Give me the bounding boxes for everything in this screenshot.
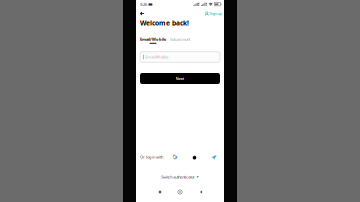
staticText: Sub-account — [170, 36, 190, 42]
button[interactable]: Continue with Google — [172, 154, 178, 160]
button[interactable]: Back — [197, 188, 205, 196]
button[interactable]: Home — [176, 188, 184, 196]
button[interactable]: Switch authenticator — [136, 173, 224, 181]
staticText: Switch authenticator — [161, 174, 195, 180]
staticText: Next — [175, 76, 184, 81]
button[interactable]: Sign up — [205, 11, 221, 16]
button[interactable]: Next — [140, 73, 220, 84]
button[interactable]: Back — [140, 10, 147, 17]
staticText: Email/Mobile — [140, 36, 166, 42]
button[interactable]: Recent apps — [156, 188, 164, 196]
staticText: Email/Mobile — [145, 54, 168, 60]
staticText: Sign up — [209, 11, 221, 16]
staticText: 9:26 — [140, 2, 147, 7]
button[interactable]: Continue with Apple — [192, 155, 197, 160]
button[interactable]: Email/Mobile — [140, 36, 166, 44]
staticText: Or log in with — [140, 154, 163, 160]
staticText: Welcome back! — [140, 19, 189, 27]
button[interactable]: Sub-account — [170, 36, 190, 42]
button[interactable]: Continue with Telegram — [211, 154, 217, 160]
